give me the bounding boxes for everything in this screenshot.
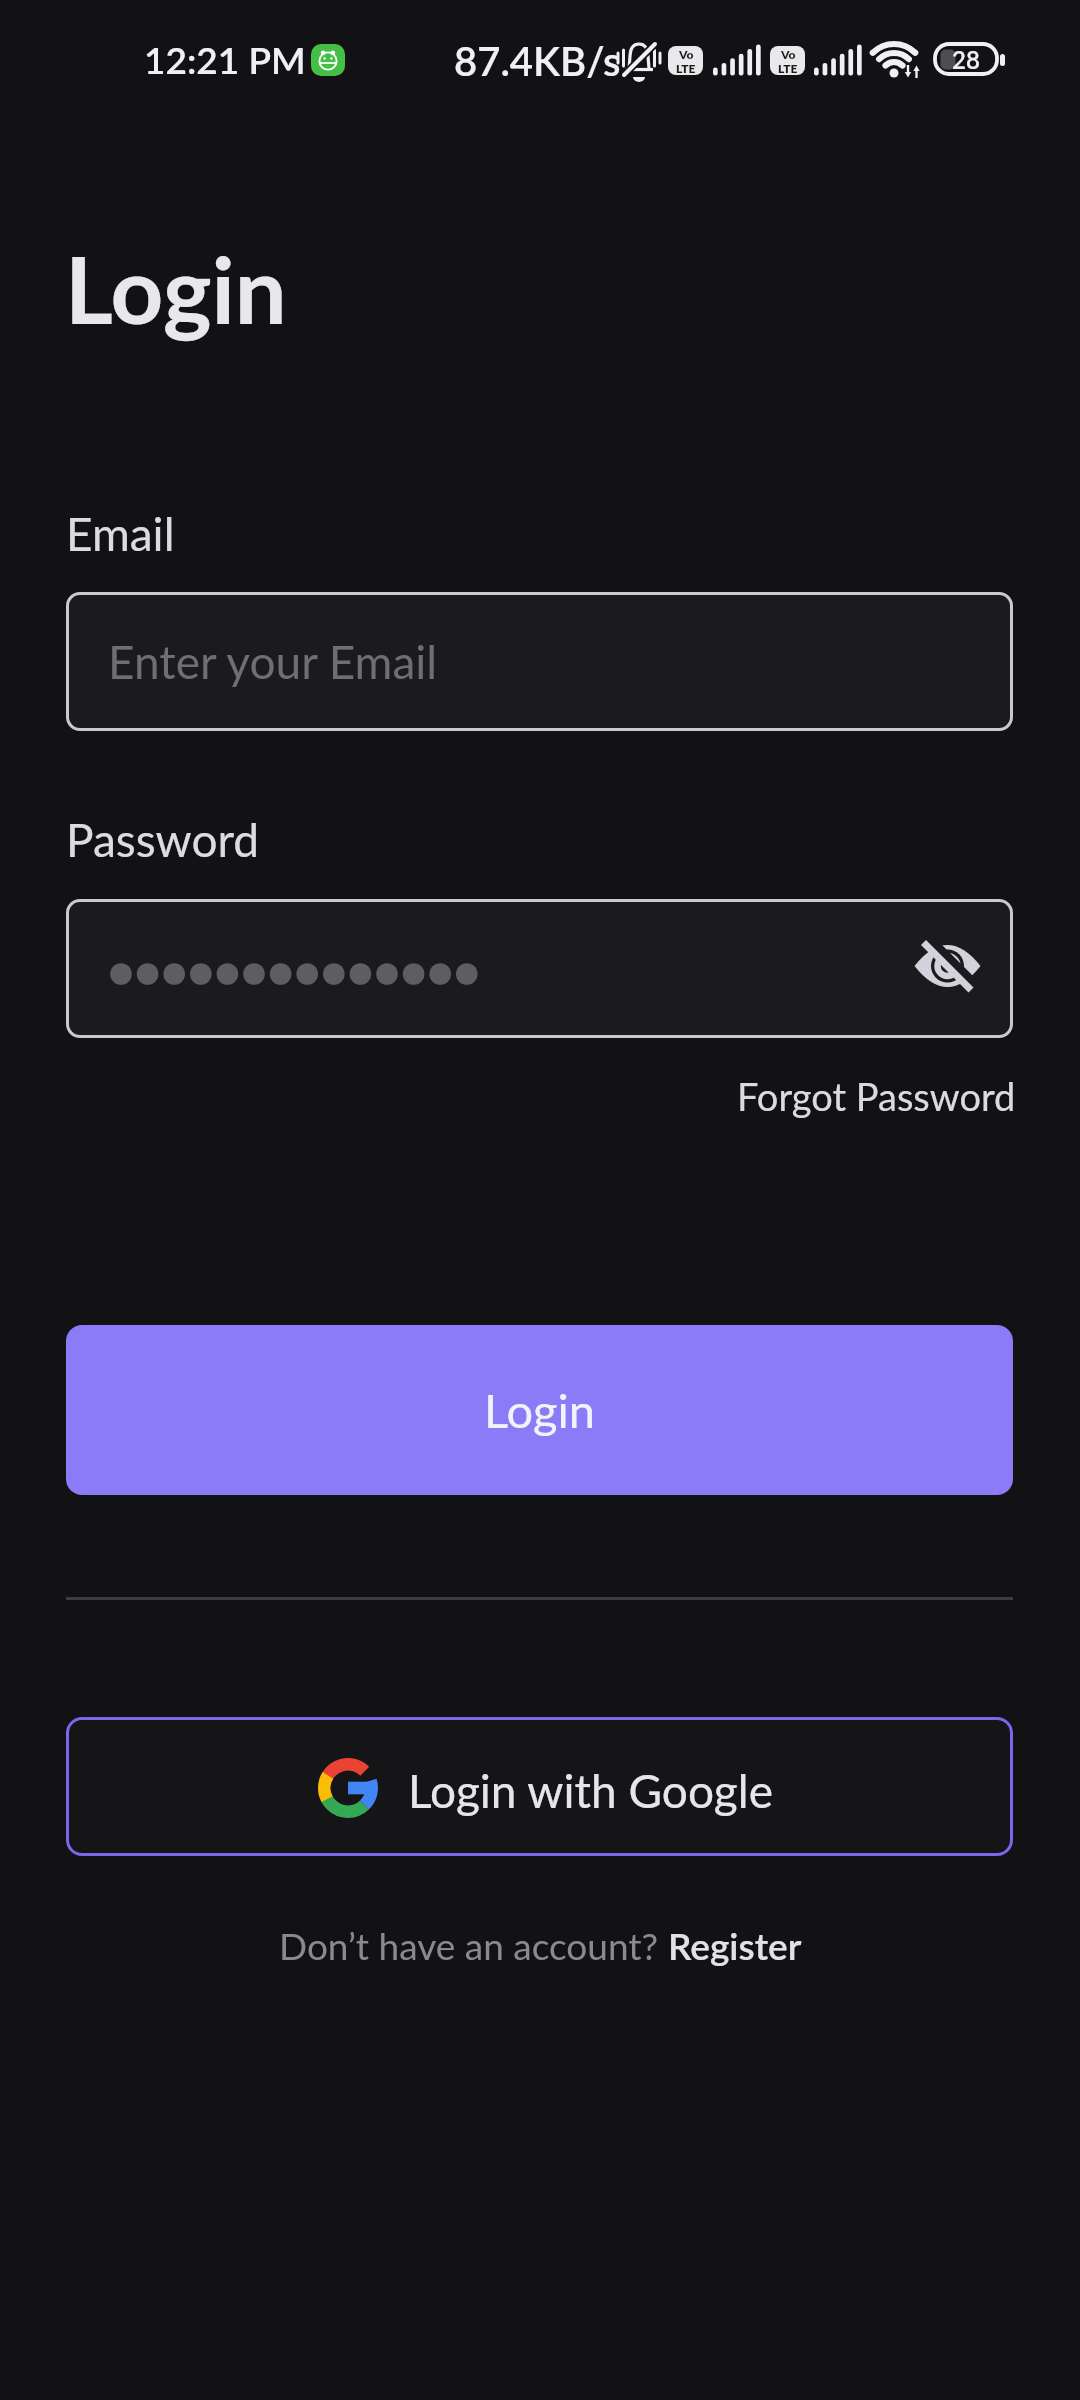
staticText: Email	[66, 506, 175, 561]
staticText: LTE	[778, 61, 798, 75]
button[interactable]: Login	[66, 1325, 1013, 1495]
button[interactable]	[914, 935, 981, 997]
staticText: 12:21 PM	[144, 37, 306, 81]
staticText: 28	[952, 45, 980, 74]
button[interactable]: Login with Google	[66, 1717, 1013, 1856]
staticText: Login	[65, 233, 287, 343]
staticText: Register	[668, 1923, 802, 1967]
staticText: 87.4KB/s	[454, 37, 621, 85]
staticText: Vo	[781, 47, 796, 61]
button[interactable]: Forgot Password	[737, 1073, 1016, 1119]
button[interactable]: Enter your Email	[66, 592, 1013, 731]
staticText: Forgot Password	[737, 1073, 1016, 1119]
staticText: Login	[484, 1382, 595, 1438]
staticText: Password	[66, 812, 260, 867]
staticText: LTE	[676, 61, 696, 75]
staticText: Don’t have an account?	[279, 1923, 668, 1967]
staticText: Login with Google	[408, 1763, 773, 1818]
staticText: Vo	[679, 47, 694, 61]
button[interactable]	[66, 899, 1013, 1038]
button[interactable]: Register	[668, 1923, 802, 1967]
staticText: Enter your Email	[108, 634, 438, 689]
